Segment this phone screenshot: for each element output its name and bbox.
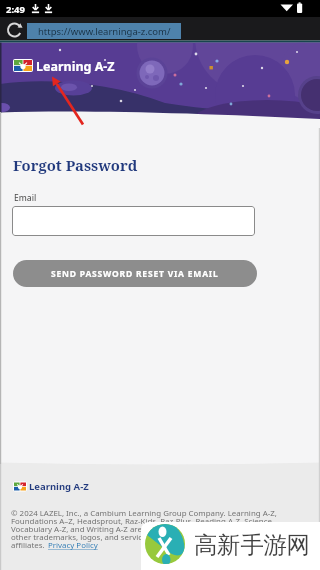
button[interactable]	[12, 206, 255, 236]
button[interactable]: SEND PASSWORD RESET VIA EMAIL	[13, 260, 257, 287]
staticText: Privacy Policy	[48, 540, 98, 551]
staticText: other trademarks, logos, and service nam…	[11, 532, 268, 543]
staticText: Learning A-Z	[36, 58, 115, 75]
staticText: Foundations A–Z, Headsprout, Raz-Kids, R…	[11, 516, 272, 527]
staticText: SEND PASSWORD RESET VIA EMAIL	[51, 268, 219, 280]
button[interactable]: Privacy Policy	[48, 540, 98, 551]
staticText: 2:49	[6, 3, 25, 16]
staticText: © 2024 LAZEL, Inc., a Cambium Learning G…	[11, 508, 277, 519]
staticText: Vocabulary A-Z, and Writing A-Z are regi…	[11, 524, 263, 535]
button[interactable]: 高新手游网	[141, 522, 320, 570]
staticText: Forgot Password	[13, 155, 138, 175]
staticText: affiliates.	[11, 540, 45, 551]
staticText: 高新手游网	[194, 530, 310, 560]
staticText: https://www.learninga-z.com/	[38, 25, 171, 38]
staticText: Learning A-Z	[29, 480, 89, 493]
staticText: Email	[14, 192, 37, 204]
button[interactable]: https://www.learninga-z.com/	[27, 23, 181, 39]
